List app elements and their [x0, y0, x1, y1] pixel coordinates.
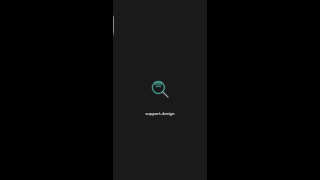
button[interactable]: Searching [143, 74, 175, 106]
staticText: support-design [145, 111, 175, 117]
